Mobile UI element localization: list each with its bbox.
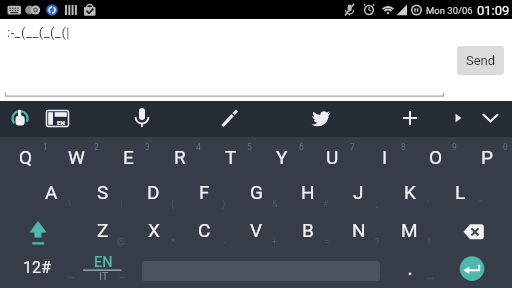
staticText: O bbox=[429, 146, 443, 168]
staticText: :-_(__(_(_(| bbox=[7, 25, 71, 40]
staticText: V bbox=[250, 219, 263, 241]
button[interactable]: C bbox=[179, 211, 230, 248]
staticText: IT bbox=[99, 270, 109, 282]
staticText: C bbox=[198, 219, 211, 241]
button[interactable]: S bbox=[77, 173, 128, 210]
button[interactable]: E bbox=[103, 138, 154, 175]
staticText: L bbox=[455, 181, 466, 203]
staticText: J bbox=[353, 181, 364, 203]
button[interactable]: L bbox=[435, 173, 486, 210]
button[interactable] bbox=[459, 256, 485, 282]
staticText: 3 bbox=[145, 142, 150, 152]
staticText: 1 bbox=[43, 142, 48, 152]
staticText: | bbox=[120, 199, 123, 210]
staticText: I bbox=[382, 146, 388, 168]
staticText: U bbox=[326, 146, 339, 168]
staticText: ! bbox=[428, 237, 431, 248]
button[interactable]: B bbox=[282, 211, 333, 248]
button[interactable]: W bbox=[51, 138, 102, 175]
staticText: ... bbox=[67, 270, 75, 281]
staticText: Mon 30/06 bbox=[426, 5, 473, 16]
button[interactable] bbox=[78, 251, 130, 287]
staticText: - bbox=[223, 237, 226, 248]
staticText: Send bbox=[466, 53, 496, 68]
button[interactable] bbox=[10, 213, 62, 250]
staticText: B bbox=[302, 219, 314, 241]
staticText: ( bbox=[171, 199, 175, 210]
button[interactable]: Send bbox=[457, 46, 504, 75]
staticText: N bbox=[352, 219, 366, 241]
staticText: Z bbox=[97, 219, 109, 241]
button[interactable]: D bbox=[128, 173, 179, 210]
staticText: R bbox=[174, 146, 186, 168]
button[interactable] bbox=[213, 102, 247, 136]
staticText: 7 bbox=[350, 142, 355, 152]
staticText: S bbox=[97, 181, 109, 203]
button[interactable] bbox=[125, 102, 159, 136]
staticText: = bbox=[324, 237, 329, 248]
staticText: 0 bbox=[503, 142, 508, 152]
button[interactable]: U bbox=[307, 138, 358, 175]
staticText: EN bbox=[94, 254, 113, 270]
staticText: 2 bbox=[94, 142, 99, 152]
button[interactable]: Q bbox=[0, 138, 51, 175]
staticText: " bbox=[479, 199, 482, 210]
staticText: D bbox=[147, 181, 160, 203]
staticText: + bbox=[272, 237, 278, 248]
button[interactable]: N bbox=[333, 211, 384, 248]
button[interactable]: V bbox=[231, 211, 282, 248]
staticText: ' bbox=[428, 199, 430, 210]
button[interactable]: K bbox=[384, 173, 435, 210]
staticText: EN bbox=[57, 119, 65, 126]
button[interactable]: H bbox=[282, 173, 333, 210]
staticText: A bbox=[45, 181, 58, 203]
button[interactable]: X bbox=[128, 211, 179, 248]
staticText: W bbox=[68, 146, 85, 168]
staticText: Y bbox=[276, 146, 288, 168]
staticText: ? bbox=[375, 237, 380, 248]
button[interactable] bbox=[303, 102, 337, 136]
button[interactable]: I bbox=[359, 138, 410, 175]
staticText: 01:09 bbox=[477, 3, 510, 18]
staticText: 4 bbox=[196, 142, 201, 152]
button[interactable]: P bbox=[461, 138, 512, 175]
staticText: M bbox=[401, 219, 418, 241]
staticText: 6 bbox=[299, 142, 304, 152]
staticText: * bbox=[171, 237, 175, 248]
button[interactable]: A bbox=[26, 173, 77, 210]
staticText: 8 bbox=[401, 142, 406, 152]
button[interactable] bbox=[441, 102, 475, 136]
button[interactable] bbox=[473, 102, 507, 136]
button[interactable]: Z bbox=[77, 211, 128, 248]
button[interactable] bbox=[393, 102, 427, 136]
button[interactable]: R bbox=[154, 138, 205, 175]
button[interactable] bbox=[396, 258, 424, 286]
staticText: G bbox=[250, 181, 263, 203]
button[interactable] bbox=[448, 213, 500, 250]
staticText: ... bbox=[119, 270, 127, 281]
staticText: Q bbox=[19, 146, 33, 168]
staticText: F bbox=[199, 181, 210, 203]
button[interactable]: F bbox=[179, 173, 230, 210]
button[interactable]: O bbox=[410, 138, 461, 175]
staticText: \ bbox=[68, 199, 72, 210]
staticText: K bbox=[404, 181, 416, 203]
staticText: # bbox=[323, 199, 329, 210]
button[interactable] bbox=[3, 102, 37, 136]
staticText: ... bbox=[427, 271, 435, 282]
staticText: & bbox=[272, 199, 278, 210]
button[interactable]: M bbox=[384, 211, 435, 248]
button[interactable]: G bbox=[231, 173, 282, 210]
staticText: X bbox=[148, 219, 160, 241]
button[interactable]: T bbox=[205, 138, 256, 175]
staticText: 12# bbox=[23, 258, 51, 277]
button[interactable]: Y bbox=[256, 138, 307, 175]
staticText: H bbox=[301, 181, 315, 203]
button[interactable]: 12# bbox=[11, 249, 63, 285]
staticText: T bbox=[225, 146, 237, 168]
staticText: ) bbox=[222, 199, 226, 210]
staticText: 5 bbox=[247, 142, 252, 152]
button[interactable] bbox=[40, 102, 74, 136]
button[interactable]: J bbox=[333, 173, 384, 210]
